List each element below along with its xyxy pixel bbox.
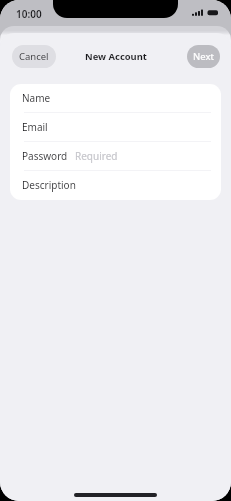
staticText: New Account (85, 50, 147, 63)
staticText: Description (22, 178, 76, 192)
staticText: Required (75, 149, 118, 163)
button[interactable]: Password (10, 142, 221, 171)
button[interactable]: Email (10, 113, 221, 142)
button[interactable]: Name (10, 84, 221, 113)
staticText: Password (22, 149, 68, 163)
staticText: Cancel (19, 50, 49, 63)
button[interactable]: Cancel (12, 45, 56, 68)
button[interactable]: Next (187, 45, 220, 68)
staticText: Name (22, 91, 51, 105)
staticText: Email (22, 120, 48, 134)
staticText: 10:00 (16, 7, 42, 21)
button[interactable]: Description (10, 171, 221, 200)
staticText: Next (193, 50, 214, 63)
